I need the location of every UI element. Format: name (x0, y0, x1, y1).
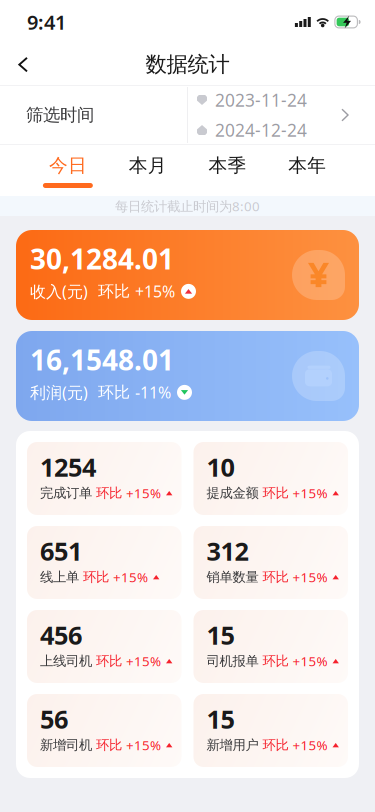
staticText: 环比 (92, 485, 126, 501)
staticText: 环比 (88, 382, 135, 402)
staticText: 15 (206, 702, 234, 736)
staticText: +15% (292, 568, 327, 586)
button[interactable]: 本月 (108, 145, 188, 196)
staticText: +15% (126, 736, 161, 754)
staticText: 环比 (258, 653, 292, 669)
staticText: 环比 (92, 737, 126, 753)
button[interactable]: 本季 (187, 145, 267, 196)
staticText: 环比 (79, 569, 113, 585)
staticText: 新增司机 (40, 737, 92, 753)
staticText: 2024-12-24 (215, 118, 307, 141)
staticText: +15% (292, 736, 327, 754)
staticText: 环比 (92, 653, 126, 669)
staticText: +15% (292, 484, 327, 502)
staticText: 56 (40, 702, 68, 736)
staticText: 651 (40, 534, 82, 568)
staticText: 9:41 (27, 9, 66, 35)
staticText: 456 (40, 618, 82, 652)
staticText: 环比 (258, 737, 292, 753)
staticText: 完成订单 (40, 485, 92, 501)
staticText: 收入(元) (30, 281, 88, 302)
staticText: 本年 (288, 154, 326, 177)
button[interactable]: 返回 (0, 44, 44, 85)
button[interactable]: 今日 (28, 145, 108, 196)
staticText: 数据统计 (145, 51, 229, 78)
staticText: -11% (135, 382, 171, 403)
staticText: 环比 (258, 569, 292, 585)
staticText: 每日统计截止时间为8:00 (115, 197, 260, 215)
button[interactable]: 本年 (267, 145, 347, 196)
staticText: +15% (126, 652, 161, 670)
staticText: 提成金额 (206, 485, 258, 501)
staticText: +15% (135, 281, 175, 302)
staticText: 销单数量 (206, 569, 258, 585)
staticText: 环比 (258, 485, 292, 501)
staticText: +15% (292, 652, 327, 670)
staticText: 今日 (49, 154, 87, 177)
staticText: 上线司机 (40, 653, 92, 669)
staticText: 312 (206, 534, 248, 568)
button[interactable]: 筛选时间 (0, 85, 375, 145)
staticText: 司机报单 (206, 653, 258, 669)
staticText: 新增用户 (206, 737, 258, 753)
staticText: 30,1284.01 (30, 240, 174, 277)
staticText: +15% (126, 484, 161, 502)
staticText: 利润(元) (30, 382, 88, 403)
staticText: 线上单 (40, 569, 79, 585)
staticText: +15% (113, 568, 148, 586)
staticText: 本季 (208, 154, 246, 177)
staticText: 本月 (129, 154, 167, 177)
staticText: 筛选时间 (26, 104, 94, 126)
staticText: 1254 (40, 450, 96, 484)
staticText: 环比 (88, 281, 135, 301)
staticText: 10 (206, 450, 234, 484)
staticText: 15 (206, 618, 234, 652)
staticText: 2023-11-24 (215, 88, 307, 111)
staticText: 16,1548.01 (30, 341, 174, 378)
